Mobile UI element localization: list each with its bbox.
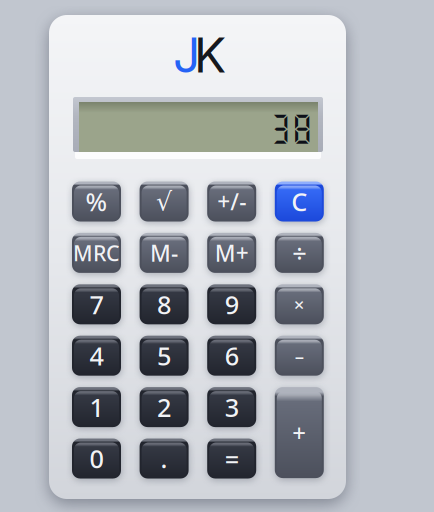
button[interactable]: 0	[72, 438, 121, 478]
staticText: 1	[89, 390, 103, 424]
staticText: √	[156, 187, 172, 216]
staticText: 6	[225, 339, 239, 372]
staticText: K	[194, 26, 226, 84]
staticText: 38	[269, 110, 313, 146]
staticText: =	[225, 442, 239, 475]
button[interactable]: 6	[207, 336, 256, 376]
button[interactable]: 1	[72, 387, 121, 427]
staticText: .	[161, 442, 168, 475]
button[interactable]: 8	[140, 284, 189, 324]
staticText: 7	[89, 287, 103, 321]
staticText: M-	[150, 238, 178, 268]
staticText: 0	[89, 442, 103, 475]
staticText: ×	[294, 292, 305, 317]
staticText: +	[292, 417, 306, 449]
staticText: +/-	[217, 186, 246, 216]
button[interactable]: ×	[275, 284, 324, 324]
staticText: 4	[89, 339, 103, 372]
button[interactable]: –	[275, 336, 324, 376]
button[interactable]: +/-	[207, 181, 256, 221]
button[interactable]: M+	[207, 233, 256, 273]
button[interactable]: 5	[140, 336, 189, 376]
button[interactable]: ÷	[275, 233, 324, 273]
staticText: ÷	[292, 236, 306, 270]
button[interactable]: 3	[207, 387, 256, 427]
button[interactable]: √	[140, 181, 189, 221]
button[interactable]: M-	[140, 233, 189, 273]
staticText: 2	[157, 390, 171, 424]
staticText: 5	[157, 339, 171, 372]
button[interactable]: 7	[72, 284, 121, 324]
staticText: J	[173, 26, 200, 84]
button[interactable]: =	[207, 438, 256, 478]
button[interactable]: 2	[140, 387, 189, 427]
button[interactable]: 4	[72, 336, 121, 376]
staticText: –	[295, 343, 304, 368]
button[interactable]: %	[72, 181, 121, 221]
button[interactable]: 9	[207, 284, 256, 324]
staticText: 8	[157, 287, 171, 321]
staticText: 3	[225, 390, 239, 424]
staticText: C	[291, 185, 307, 218]
button[interactable]: +	[275, 387, 324, 478]
staticText: 9	[225, 287, 239, 321]
button[interactable]: C	[275, 181, 324, 221]
staticText: %	[85, 185, 107, 218]
staticText: M+	[215, 238, 249, 268]
button[interactable]: .	[140, 438, 189, 478]
staticText: MRC	[73, 239, 120, 267]
button[interactable]: MRC	[72, 233, 121, 273]
